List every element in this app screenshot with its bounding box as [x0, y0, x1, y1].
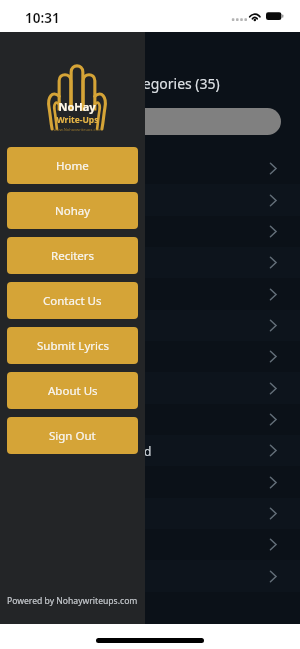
button[interactable]: Hussain Sadiq	[0, 498, 300, 529]
staticText: Mesum Abbas	[16, 224, 97, 240]
staticText: Ali Shanawar	[16, 349, 89, 365]
button[interactable]: Reciters	[7, 237, 138, 274]
staticText: Write-Ups	[56, 114, 99, 126]
button[interactable]: Home	[7, 147, 138, 184]
staticText: Reciters	[51, 248, 95, 264]
staticText: Shabbir Hussain Ahmed	[16, 443, 152, 459]
button[interactable]: Ameer Hasan Amir	[0, 529, 300, 560]
staticText: Irfan Haider	[16, 255, 85, 271]
button[interactable]: Ali Safdar	[0, 310, 300, 341]
button[interactable]: Mir Hasan Mir	[0, 372, 300, 404]
staticText: www.Nohaywriteups.com	[53, 127, 102, 131]
staticText: Nohay	[55, 203, 91, 219]
button[interactable]: Farhan Ali Waris	[0, 184, 300, 216]
staticText: Powered by Nohaywriteups.com	[7, 595, 138, 607]
button[interactable]: Submit Lyrics	[7, 327, 138, 364]
staticText: Submit Lyrics	[37, 338, 109, 354]
button[interactable]: Search Categories	[19, 108, 281, 135]
staticText: Ali Safdar	[16, 318, 70, 334]
staticText: NoHay	[58, 99, 96, 114]
button[interactable]: Ali Abbas	[0, 560, 300, 592]
button[interactable]: Ali Shanawar	[0, 341, 300, 372]
staticText: Sign Out	[49, 428, 96, 444]
button[interactable]: Syed Raza Abbas	[0, 404, 300, 435]
staticText: Nadeem Sarwar	[16, 161, 107, 177]
staticText: Home	[56, 158, 89, 174]
button[interactable]: Nohay	[7, 192, 138, 229]
staticText: Mir Hasan Mir	[16, 380, 96, 396]
staticText: Categories (35)	[121, 74, 220, 93]
button[interactable]: Sign Out	[7, 417, 138, 454]
button[interactable]: Shadman Raza	[0, 278, 300, 310]
button[interactable]: Mesum Abbas	[0, 216, 300, 247]
button[interactable]: About Us	[7, 372, 138, 409]
staticText: 10:31	[25, 9, 60, 27]
staticText: Contact Us	[43, 293, 102, 309]
staticText: Farhan Ali Waris	[16, 192, 108, 208]
staticText: Syed Raza Abbas	[16, 412, 111, 428]
button[interactable]: Zain Ul Abideen	[0, 466, 300, 498]
button[interactable]: Shabbir Hussain Ahmed	[0, 435, 300, 466]
button[interactable]: Nadeem Sarwar	[0, 153, 300, 184]
staticText: Search Categories	[33, 114, 127, 129]
button[interactable]: Irfan Haider	[0, 247, 300, 278]
button[interactable]: Contact Us	[7, 282, 138, 319]
staticText: About Us	[48, 383, 98, 399]
staticText: Shadman Raza	[16, 286, 100, 302]
